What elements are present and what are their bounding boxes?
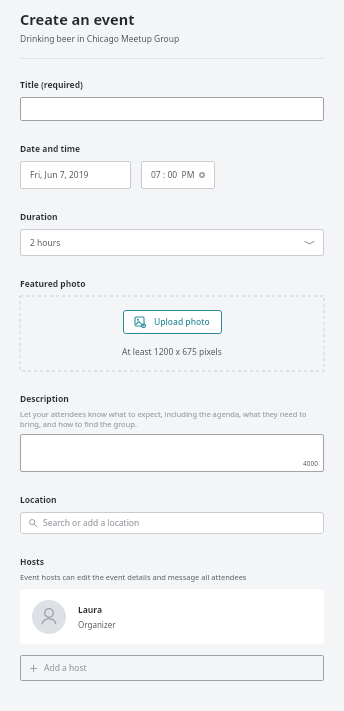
staticText: Date and time bbox=[20, 143, 81, 155]
button[interactable] bbox=[20, 97, 324, 121]
staticText: Create an event bbox=[20, 9, 135, 29]
staticText: Title (required) bbox=[20, 79, 83, 91]
staticText: 2 hours bbox=[30, 237, 61, 249]
button[interactable]: 2 hours bbox=[20, 229, 324, 256]
staticText: At least 1200 x 675 pixels bbox=[122, 346, 222, 358]
staticText: Laura bbox=[78, 604, 103, 616]
staticText: Location bbox=[20, 494, 57, 506]
staticText: Upload photo bbox=[154, 316, 210, 328]
staticText: Add a host bbox=[44, 662, 87, 674]
staticText: Fri, Jun 7, 2019 bbox=[30, 169, 89, 181]
staticText: Hosts bbox=[20, 556, 45, 568]
button[interactable]: Search or add a location bbox=[20, 512, 324, 534]
button[interactable]: Laura bbox=[20, 589, 324, 644]
button[interactable]: Upload photo bbox=[123, 310, 222, 334]
button[interactable]: 4000 bbox=[20, 434, 324, 472]
staticText: Duration bbox=[20, 211, 58, 223]
staticText: 07 : 00 PM bbox=[151, 169, 195, 181]
button[interactable]: Fri, Jun 7, 2019 bbox=[20, 161, 131, 189]
staticText: Drinking beer in Chicago Meetup Group bbox=[20, 33, 180, 45]
staticText: Let your attendees know what to expect, … bbox=[20, 409, 324, 429]
staticText: Description bbox=[20, 393, 69, 405]
staticText: Event hosts can edit the event details a… bbox=[20, 572, 247, 582]
staticText: Organizer bbox=[78, 619, 116, 630]
staticText: Search or add a location bbox=[43, 517, 140, 529]
button[interactable]: Add a host bbox=[20, 655, 324, 681]
staticText: 4000 bbox=[303, 459, 318, 468]
button[interactable]: 07 : 00 PM bbox=[141, 161, 215, 189]
staticText: Featured photo bbox=[20, 278, 86, 290]
